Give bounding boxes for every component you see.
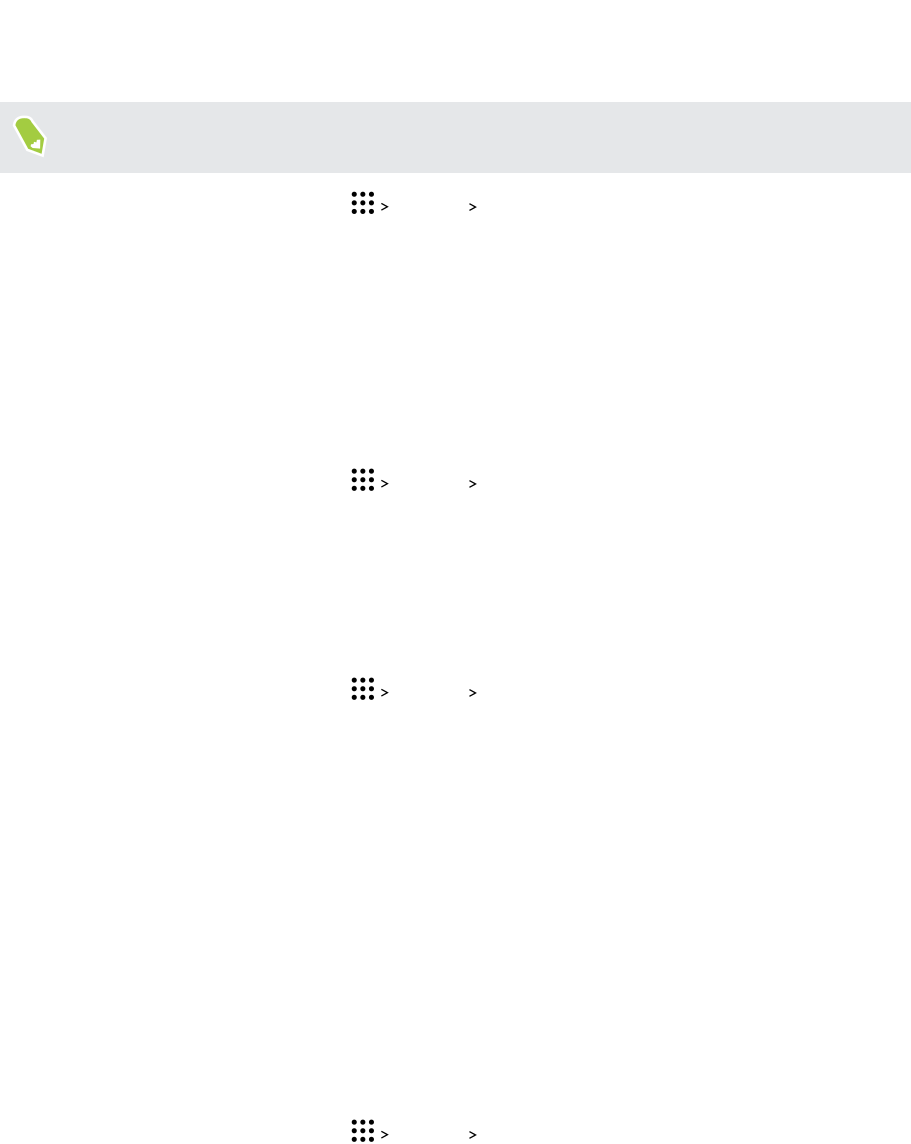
button[interactable]: All apps xyxy=(352,678,388,700)
button[interactable]: Next section xyxy=(469,192,476,214)
button[interactable]: Next section xyxy=(469,469,476,491)
button[interactable]: Home xyxy=(10,110,50,158)
button[interactable]: Next section xyxy=(469,1120,476,1142)
button[interactable]: All apps xyxy=(352,192,388,214)
button[interactable]: All apps xyxy=(352,469,388,491)
button[interactable]: All apps xyxy=(352,1120,388,1142)
button[interactable]: Next section xyxy=(469,678,476,700)
